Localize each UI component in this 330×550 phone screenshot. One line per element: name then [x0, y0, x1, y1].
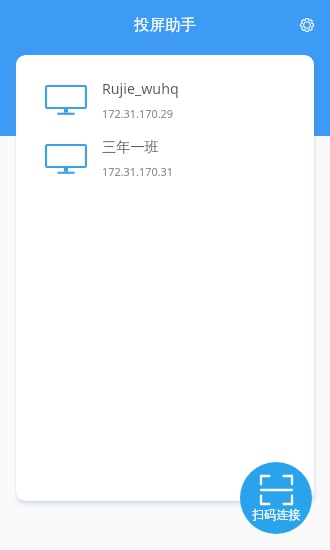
- staticText: 172.31.170.31: [102, 164, 174, 179]
- staticText: 扫码连接: [252, 507, 301, 522]
- staticText: 172.31.170.29: [102, 106, 174, 121]
- button[interactable]: Rujie_wuhq: [16, 70, 314, 129]
- staticText: 三年一班: [102, 138, 159, 156]
- button[interactable]: 扫码连接: [240, 462, 312, 534]
- button[interactable]: 三年一班: [16, 129, 314, 188]
- staticText: 投屏助手: [134, 15, 196, 35]
- button[interactable]: Settings: [293, 11, 321, 39]
- staticText: Rujie_wuhq: [102, 79, 179, 98]
